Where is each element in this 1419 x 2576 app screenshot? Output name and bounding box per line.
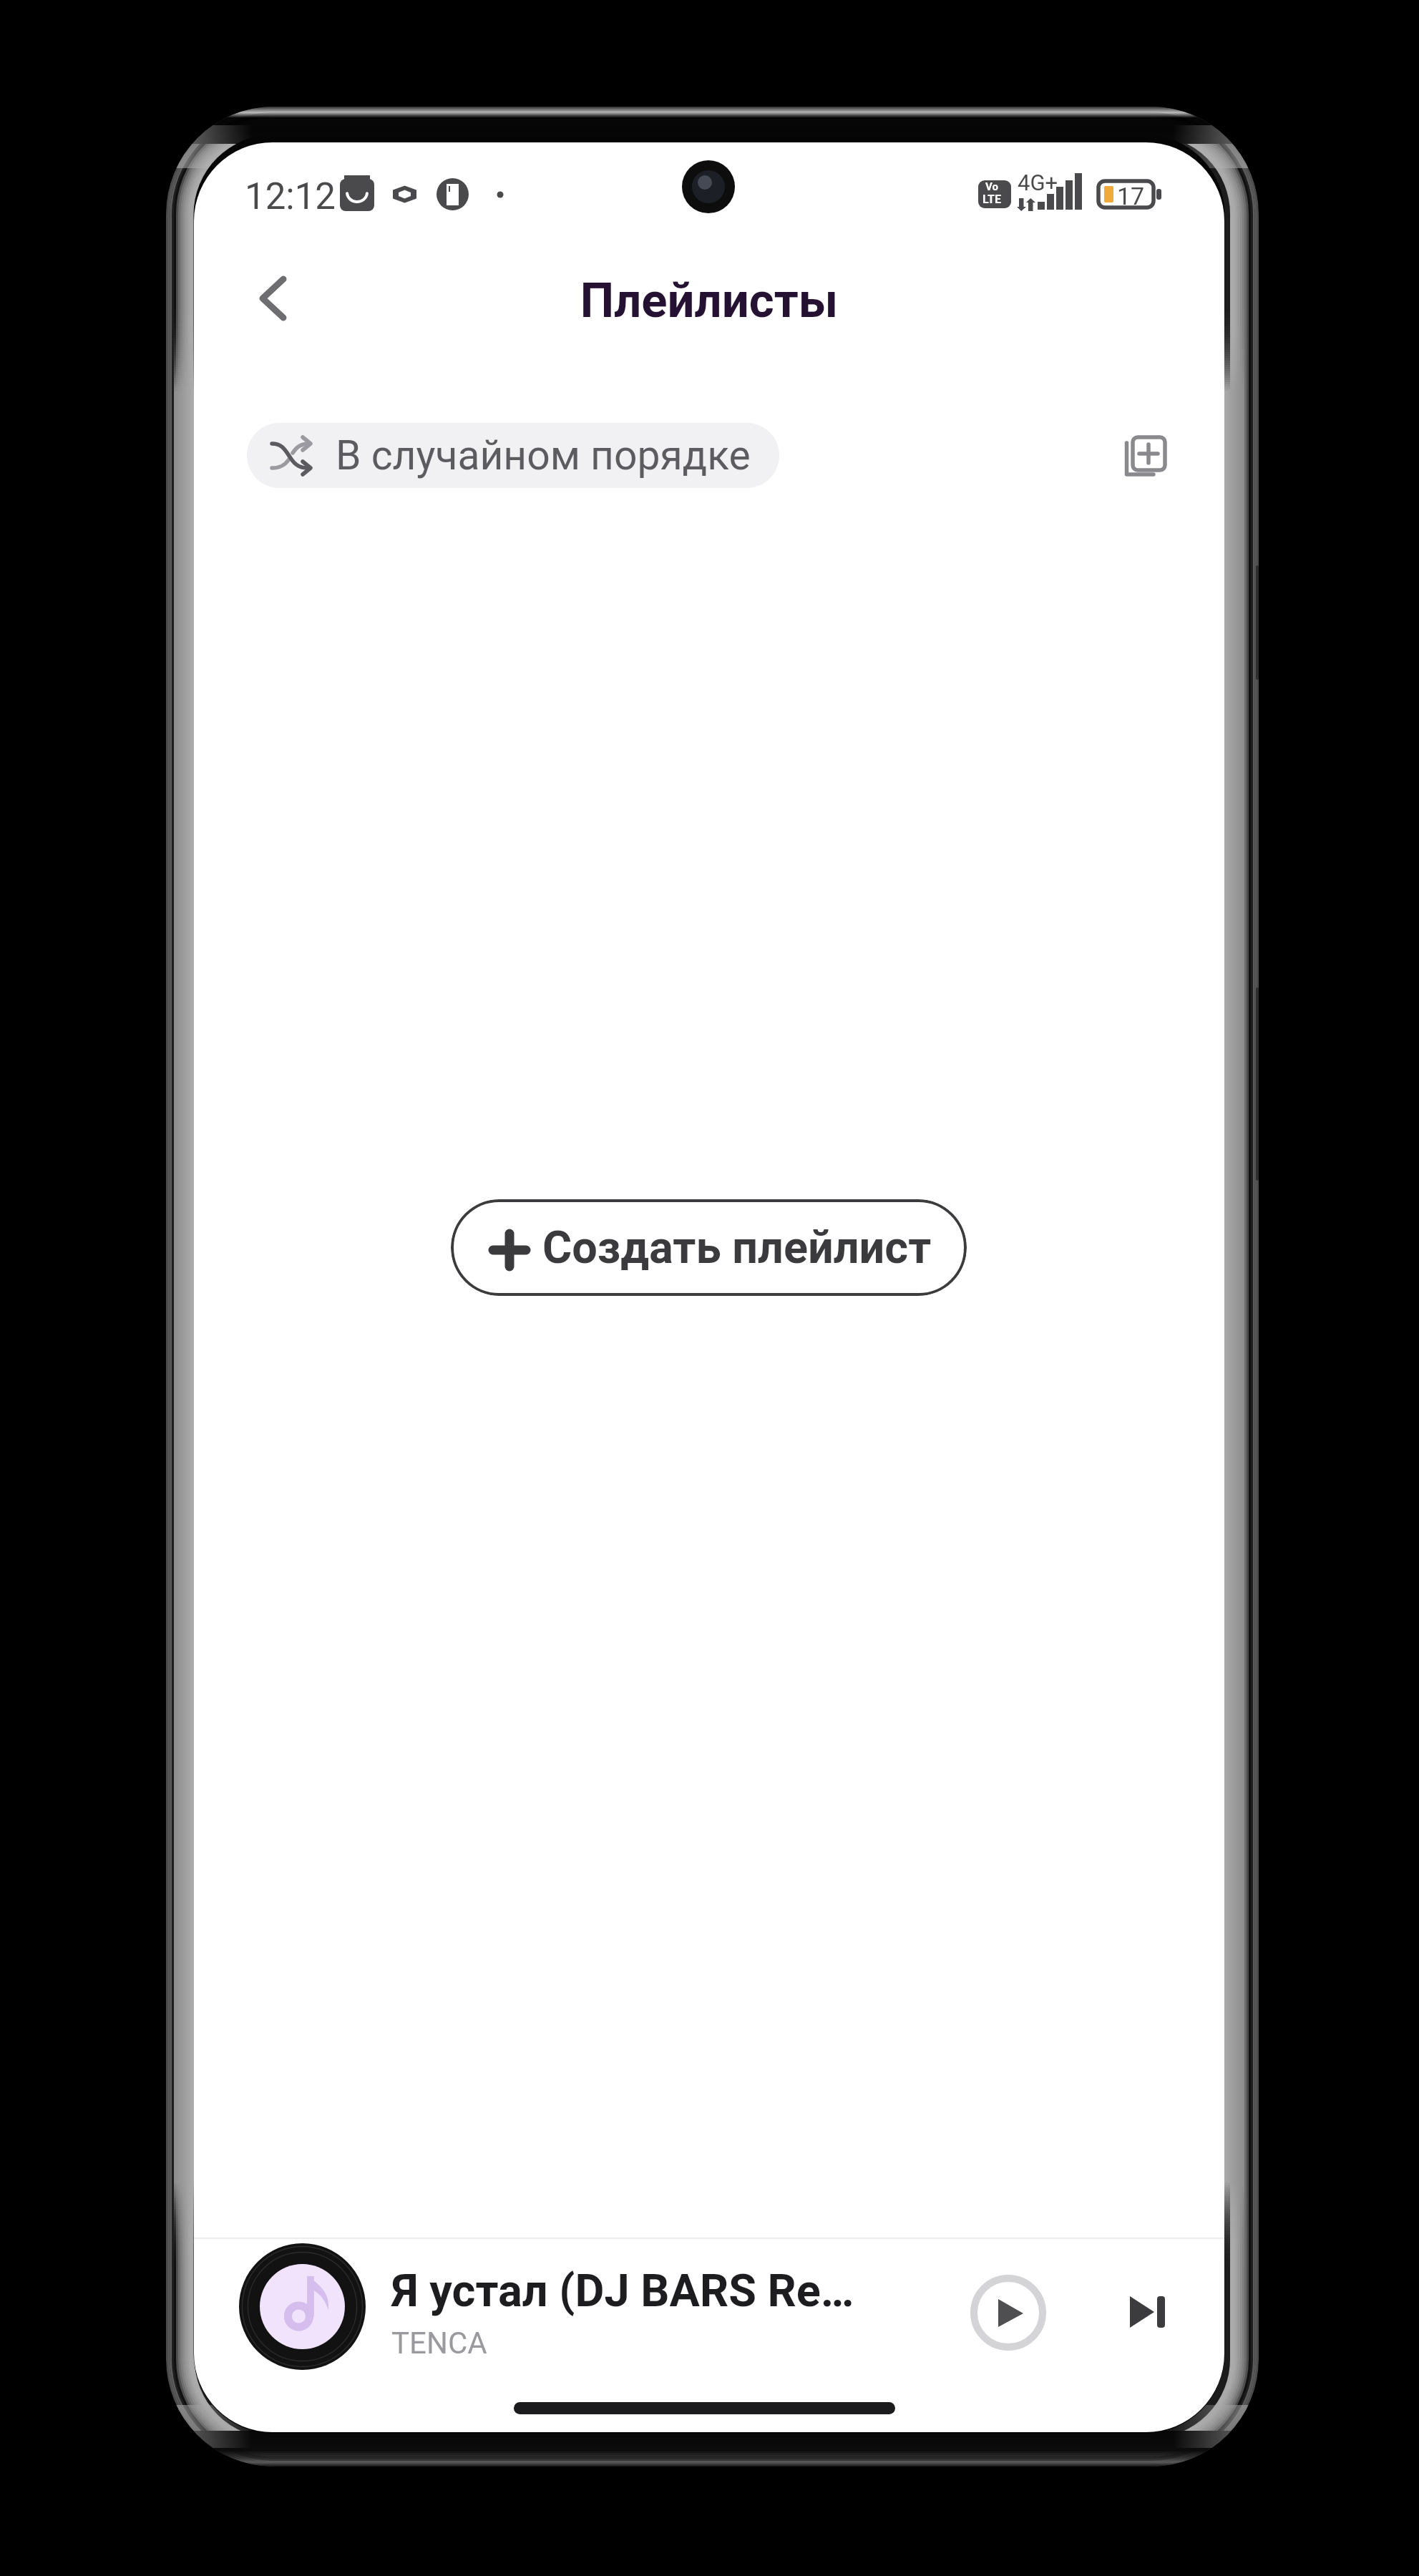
staticText: TENCA xyxy=(391,2326,487,2361)
staticText: Я устал (DJ BARS Re… xyxy=(391,2265,854,2318)
staticText: 4G+ xyxy=(1018,170,1058,195)
button[interactable]: Next xyxy=(1108,2274,1186,2353)
button[interactable]: Add playlist xyxy=(1113,424,1178,488)
staticText: Плейлисты xyxy=(194,273,1224,329)
staticText: 17 xyxy=(1117,182,1145,210)
staticText: 12:12 xyxy=(245,175,336,218)
staticText: LTE xyxy=(982,192,1001,206)
button[interactable]: Создать плейлист xyxy=(451,1199,967,1296)
staticText: В случайном порядке xyxy=(336,431,751,479)
button[interactable]: Play xyxy=(961,2265,1055,2359)
button[interactable]: Я устал (DJ BARS Re… xyxy=(194,2239,1224,2374)
button[interactable]: В случайном порядке xyxy=(247,423,779,488)
button[interactable]: Back xyxy=(222,248,322,348)
staticText: Vo xyxy=(985,180,998,193)
staticText: Создать плейлист xyxy=(542,1221,932,1274)
